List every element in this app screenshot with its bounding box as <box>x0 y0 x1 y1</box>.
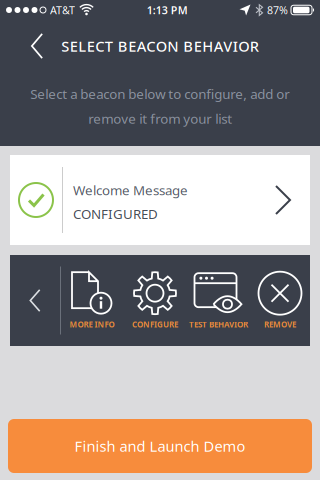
staticText: 1:13 PM <box>147 3 188 17</box>
button[interactable]: Previous <box>10 255 60 346</box>
staticText: REMOVE <box>264 319 296 330</box>
button[interactable]: Back <box>0 33 43 59</box>
staticText: TEST BEHAVIOR <box>189 319 248 330</box>
staticText: AT&T <box>50 3 75 17</box>
button[interactable]: CONFIGURE <box>132 271 178 330</box>
staticText: 87% <box>267 3 288 17</box>
button[interactable]: TEST BEHAVIOR <box>189 271 248 330</box>
staticText: SELECT BEACON BEHAVIOR <box>61 36 259 56</box>
staticText: Welcome Message <box>73 181 188 199</box>
staticText: MORE INFO <box>69 319 114 330</box>
button[interactable]: MORE INFO <box>69 271 114 330</box>
button[interactable]: REMOVE <box>258 271 302 330</box>
staticText: Select a beacon below to configure, add … <box>30 85 290 127</box>
staticText: CONFIGURE <box>132 319 178 330</box>
staticText: CONFIGURED <box>73 205 158 223</box>
button[interactable]: Welcome Message <box>10 155 310 245</box>
staticText: Finish and Launch Demo <box>74 436 245 456</box>
button[interactable]: Finish and Launch Demo <box>8 419 312 473</box>
